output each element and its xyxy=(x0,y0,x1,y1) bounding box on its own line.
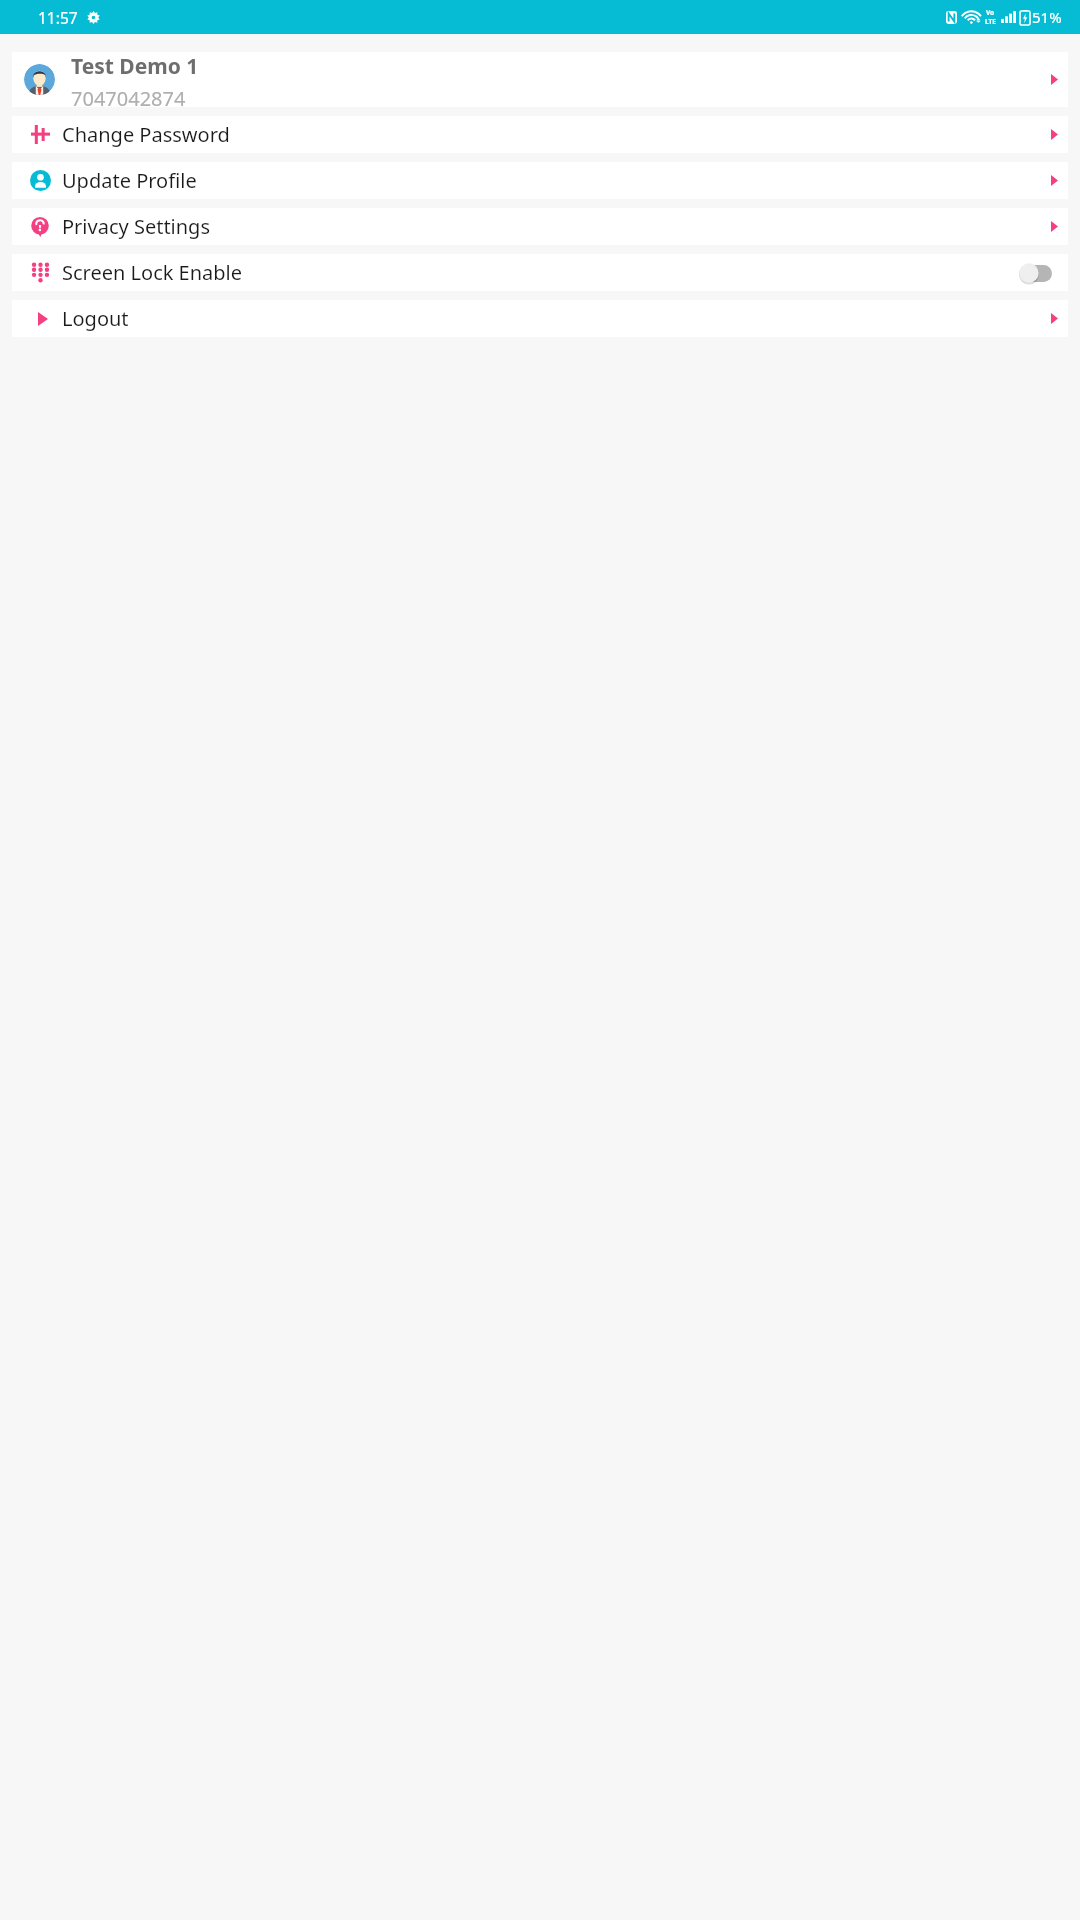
button[interactable]: Screen lock toggle, off xyxy=(1018,262,1052,284)
staticText: 7047042874 xyxy=(71,85,186,107)
button[interactable]: Logout xyxy=(12,300,1068,337)
staticText: Logout xyxy=(62,305,1051,332)
button[interactable]: Update Profile xyxy=(12,162,1068,199)
staticText: Update Profile xyxy=(62,167,1051,194)
button[interactable]: Change Password xyxy=(12,116,1068,153)
button[interactable]: Screen Lock Enable xyxy=(12,254,1068,291)
staticText: Privacy Settings xyxy=(62,213,1051,240)
staticText: 11:57 xyxy=(38,7,78,28)
button[interactable]: Privacy Settings xyxy=(12,208,1068,245)
staticText: Screen Lock Enable xyxy=(62,259,1018,286)
staticText: Vo xyxy=(986,8,995,17)
button[interactable]: Test Demo 1 xyxy=(12,52,1068,107)
staticText: Change Password xyxy=(62,121,1051,148)
staticText: LTE xyxy=(985,17,996,26)
staticText: Test Demo 1 xyxy=(71,52,199,81)
staticText: 51% xyxy=(1032,7,1062,27)
